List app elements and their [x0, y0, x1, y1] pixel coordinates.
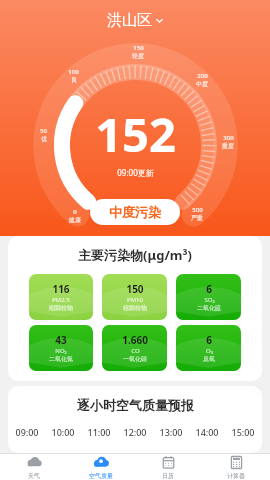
staticText: 6: [206, 282, 212, 296]
button[interactable]: 中度污染: [90, 199, 180, 225]
button[interactable]: 日历: [134, 454, 202, 480]
staticText: 100: [68, 68, 79, 76]
staticText: 主要污染物(μg/m³): [78, 246, 192, 264]
button[interactable]: 6: [176, 274, 241, 320]
button[interactable]: 洪山区: [101, 9, 170, 32]
button[interactable]: 43: [29, 325, 93, 371]
staticText: 健康: [69, 216, 81, 224]
staticText: 500: [192, 206, 203, 214]
staticText: 中度污染: [109, 204, 161, 220]
staticText: 良: [71, 76, 77, 84]
staticText: 14:00: [195, 426, 219, 438]
staticText: 200: [197, 72, 208, 80]
staticText: 13:00: [159, 426, 183, 438]
staticText: 150: [133, 44, 144, 52]
button[interactable]: 1.660: [102, 325, 167, 371]
staticText: 严重: [191, 214, 203, 222]
staticText: 15:00: [231, 426, 255, 438]
button[interactable]: 150: [102, 274, 167, 320]
staticText: 逐小时空气质量预报: [77, 397, 194, 413]
staticText: 优: [41, 135, 47, 143]
button[interactable]: 天气: [0, 454, 67, 480]
staticText: 0: [73, 208, 77, 216]
staticText: 10:00: [51, 426, 75, 438]
staticText: SO₂: [204, 296, 215, 304]
staticText: 中度: [196, 80, 208, 88]
staticText: 洪山区: [107, 11, 152, 30]
staticText: NO₂: [55, 347, 67, 355]
staticText: 09:00: [15, 426, 39, 438]
staticText: 6: [206, 333, 212, 347]
staticText: 细颗粒物: [49, 304, 73, 312]
staticText: 粗颗粒物: [123, 304, 147, 312]
button[interactable]: 逐小时空气质量预报: [8, 386, 262, 453]
staticText: 50: [40, 127, 47, 135]
staticText: 轻度: [132, 52, 144, 60]
staticText: 11:00: [87, 426, 111, 438]
staticText: PM2.5: [52, 296, 70, 304]
staticText: 二氧化氮: [49, 355, 73, 363]
staticText: 二氧化硫: [197, 304, 221, 312]
staticText: CO: [131, 347, 140, 355]
button[interactable]: 116: [29, 274, 93, 320]
staticText: 重度: [222, 142, 234, 150]
staticText: 计算器: [227, 472, 245, 480]
staticText: 臭氧: [203, 355, 215, 363]
staticText: 116: [52, 282, 70, 296]
staticText: 09:00更新: [117, 167, 154, 178]
staticText: 日历: [162, 472, 174, 480]
staticText: 一氧化碳: [123, 355, 147, 363]
button[interactable]: 空气质量: [67, 454, 134, 480]
staticText: O₃: [206, 347, 213, 355]
staticText: 12:00: [123, 426, 147, 438]
staticText: 152: [95, 102, 176, 166]
staticText: 空气质量: [89, 472, 113, 480]
staticText: 300: [223, 134, 234, 142]
staticText: 天气: [28, 472, 40, 480]
staticText: 150: [126, 282, 144, 296]
button[interactable]: 计算器: [202, 454, 270, 480]
staticText: 43: [55, 333, 67, 347]
staticText: 1.660: [122, 333, 148, 347]
button[interactable]: 6: [176, 325, 241, 371]
staticText: PM10: [127, 296, 143, 304]
